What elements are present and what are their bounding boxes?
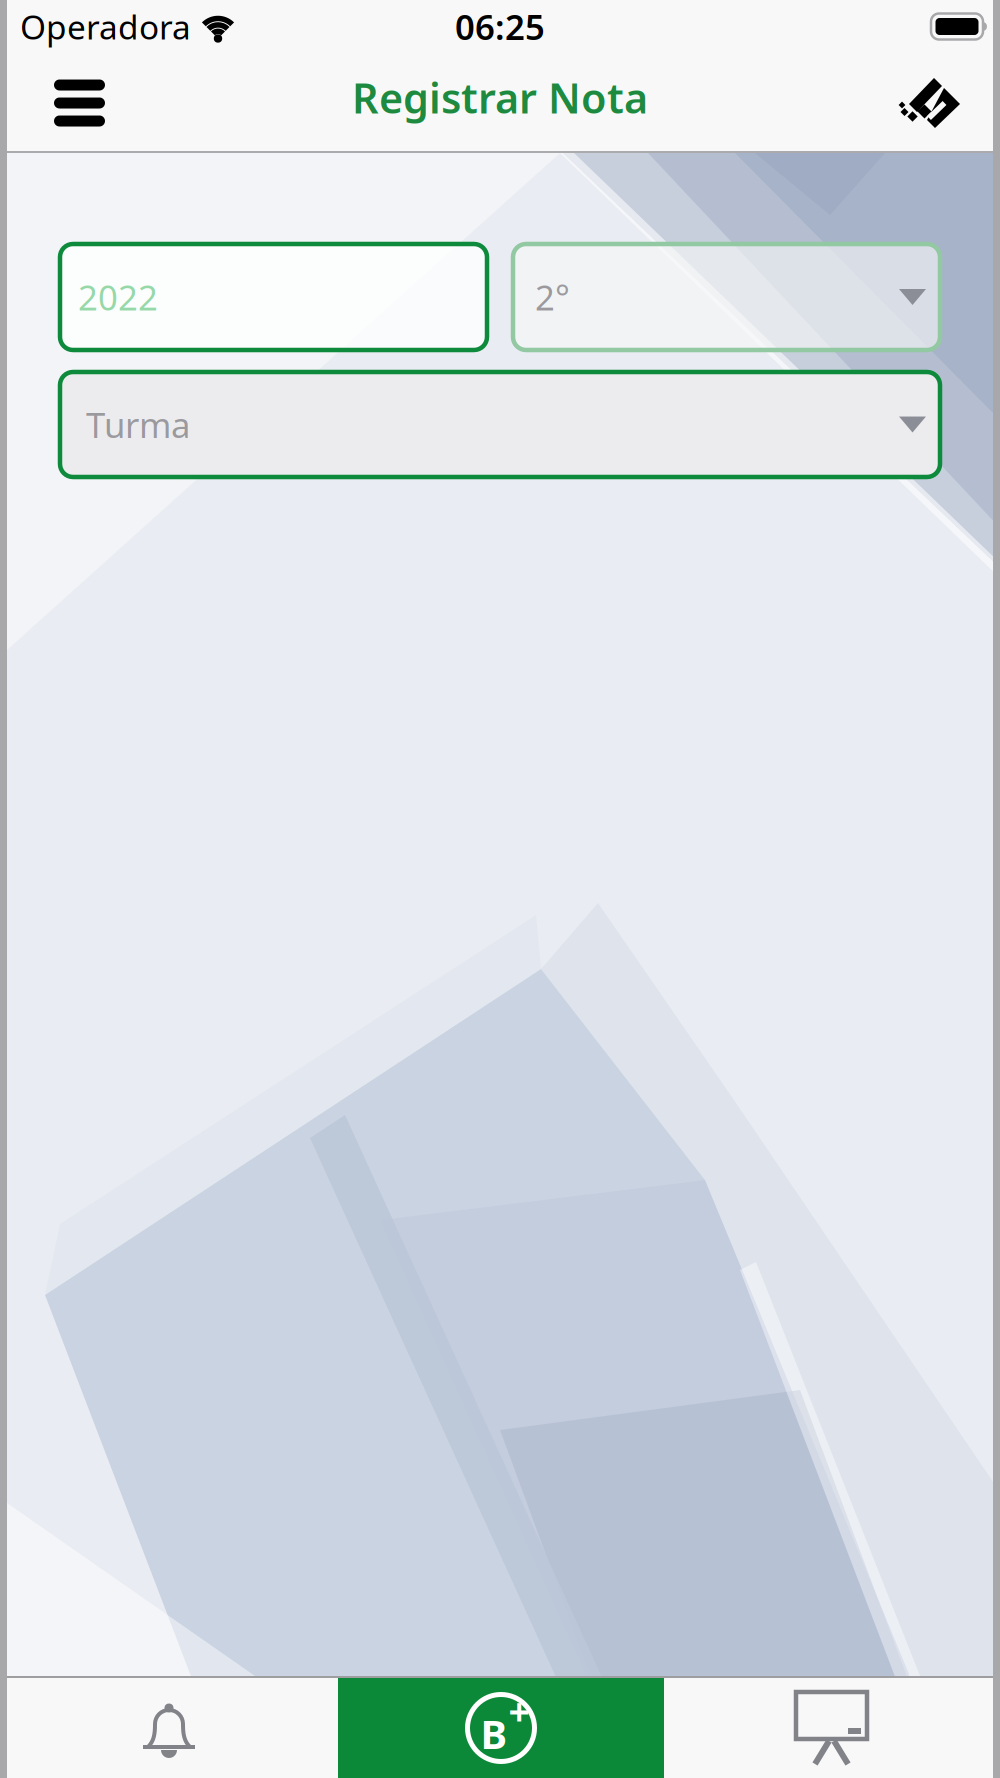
button[interactable]: Sponte xyxy=(896,72,1000,132)
staticText: + xyxy=(508,1686,529,1736)
staticText: 06:25 xyxy=(455,3,545,49)
staticText: Operadora xyxy=(20,4,191,49)
staticText: Registrar Nota xyxy=(352,70,648,125)
staticText: Turma xyxy=(86,401,190,447)
button[interactable]: Notificações xyxy=(0,1678,338,1778)
button[interactable]: Turma xyxy=(60,372,940,477)
button[interactable]: 2022 xyxy=(60,244,487,350)
button[interactable]: Registrar Nota xyxy=(338,1678,664,1778)
button[interactable]: 2° xyxy=(513,244,940,350)
staticText: B xyxy=(480,1707,507,1760)
button[interactable]: Quadro xyxy=(664,1678,1000,1778)
staticText: 2° xyxy=(535,274,570,320)
button[interactable]: Menu xyxy=(0,77,105,126)
staticText: 2022 xyxy=(78,274,158,320)
